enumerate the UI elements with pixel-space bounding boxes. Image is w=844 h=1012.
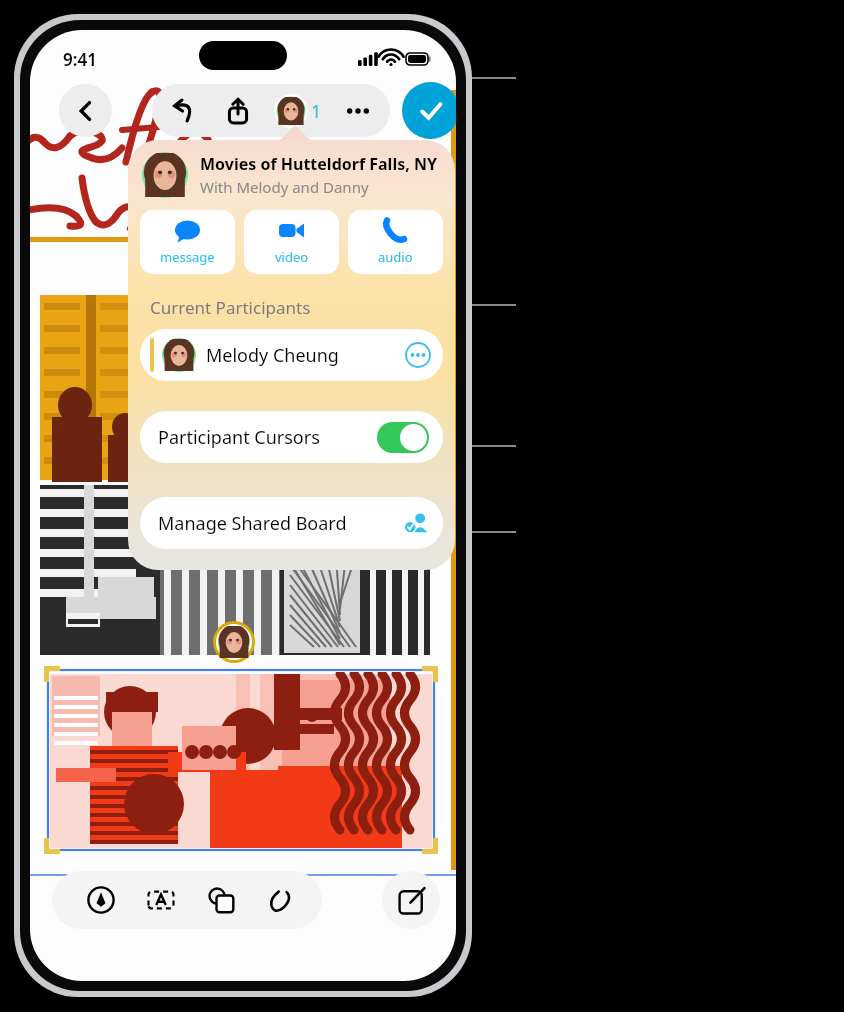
staticText: Movies of Hutteldorf Falls, NY bbox=[200, 153, 437, 175]
staticText: video bbox=[275, 248, 309, 266]
button[interactable]: Melody Cheung bbox=[140, 329, 443, 381]
button[interactable]: 1 bbox=[274, 94, 322, 128]
button[interactable]: Manage Shared Board bbox=[140, 497, 443, 549]
other: Options bbox=[405, 342, 431, 368]
staticText: Current Participants bbox=[150, 296, 311, 319]
button[interactable]: Draw bbox=[76, 875, 126, 925]
staticText: Melody Cheung bbox=[206, 343, 339, 368]
staticText: With Melody and Danny bbox=[200, 177, 369, 197]
staticText: Participant Cursors bbox=[158, 425, 320, 450]
staticText: 9:41 bbox=[63, 48, 97, 71]
button[interactable]: More bbox=[340, 93, 376, 129]
button[interactable]: Attach bbox=[256, 875, 306, 925]
staticText: audio bbox=[378, 248, 413, 266]
staticText: 1 bbox=[311, 99, 322, 124]
button[interactable]: Back bbox=[59, 84, 112, 137]
button[interactable]: Participant Cursors bbox=[140, 411, 443, 463]
button[interactable]: New note bbox=[382, 871, 440, 929]
button[interactable]: Text bbox=[136, 875, 186, 925]
staticText: Manage Shared Board bbox=[158, 511, 347, 536]
button[interactable]: Shapes bbox=[196, 875, 246, 925]
button[interactable]: Done bbox=[402, 82, 456, 139]
button[interactable]: message bbox=[140, 210, 235, 274]
button[interactable]: video bbox=[244, 210, 339, 274]
button[interactable]: audio bbox=[348, 210, 443, 274]
button[interactable]: Undo bbox=[166, 93, 202, 129]
button[interactable]: Share bbox=[220, 93, 256, 129]
staticText: message bbox=[160, 248, 215, 266]
